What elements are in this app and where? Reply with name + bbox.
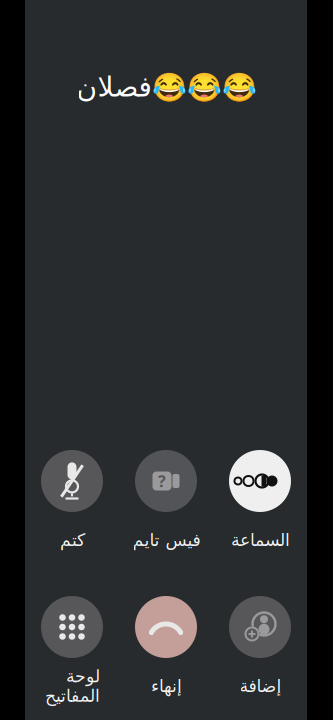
staticText: 😂😂😂فصلان — [76, 71, 256, 103]
staticText: ? — [158, 470, 166, 492]
button[interactable]: إنهاء — [119, 587, 213, 695]
staticText: كتم — [59, 530, 84, 550]
button[interactable]: السماعة — [213, 441, 307, 549]
button[interactable]: كتم — [25, 441, 119, 549]
button[interactable]: ? — [119, 441, 213, 549]
staticText: السماعة — [230, 530, 289, 550]
staticText: إضافة — [239, 676, 281, 696]
button[interactable]: لوحة المفاتيح — [25, 587, 119, 695]
staticText: إنهاء — [150, 676, 181, 696]
staticText: فيس تايم — [132, 530, 200, 550]
button[interactable]: إضافة — [213, 587, 307, 695]
staticText: لوحة المفاتيح — [44, 666, 99, 706]
